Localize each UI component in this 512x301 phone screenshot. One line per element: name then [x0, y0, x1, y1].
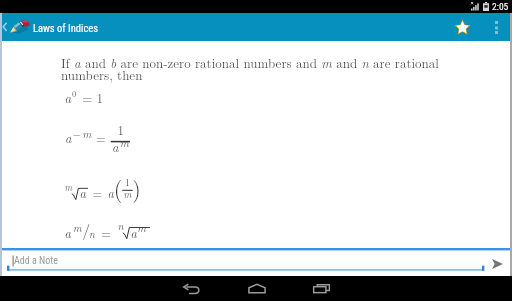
button[interactable]: Send	[484, 253, 510, 275]
staticText: If a and b are non-zero rational numbers…	[61, 53, 443, 84]
staticText: 2:05	[492, 1, 509, 12]
button[interactable]: More options	[482, 13, 512, 41]
button[interactable]: Navigate up	[0, 13, 32, 41]
button[interactable]: Favourite	[444, 13, 482, 41]
staticText: Laws of Indices	[33, 22, 98, 34]
button[interactable]: Add a Note	[0, 250, 512, 272]
button[interactable]: Back	[159, 276, 224, 301]
staticText: Add a Note	[14, 255, 58, 267]
button[interactable]: Home	[224, 276, 289, 301]
button[interactable]: Recents	[289, 276, 354, 301]
